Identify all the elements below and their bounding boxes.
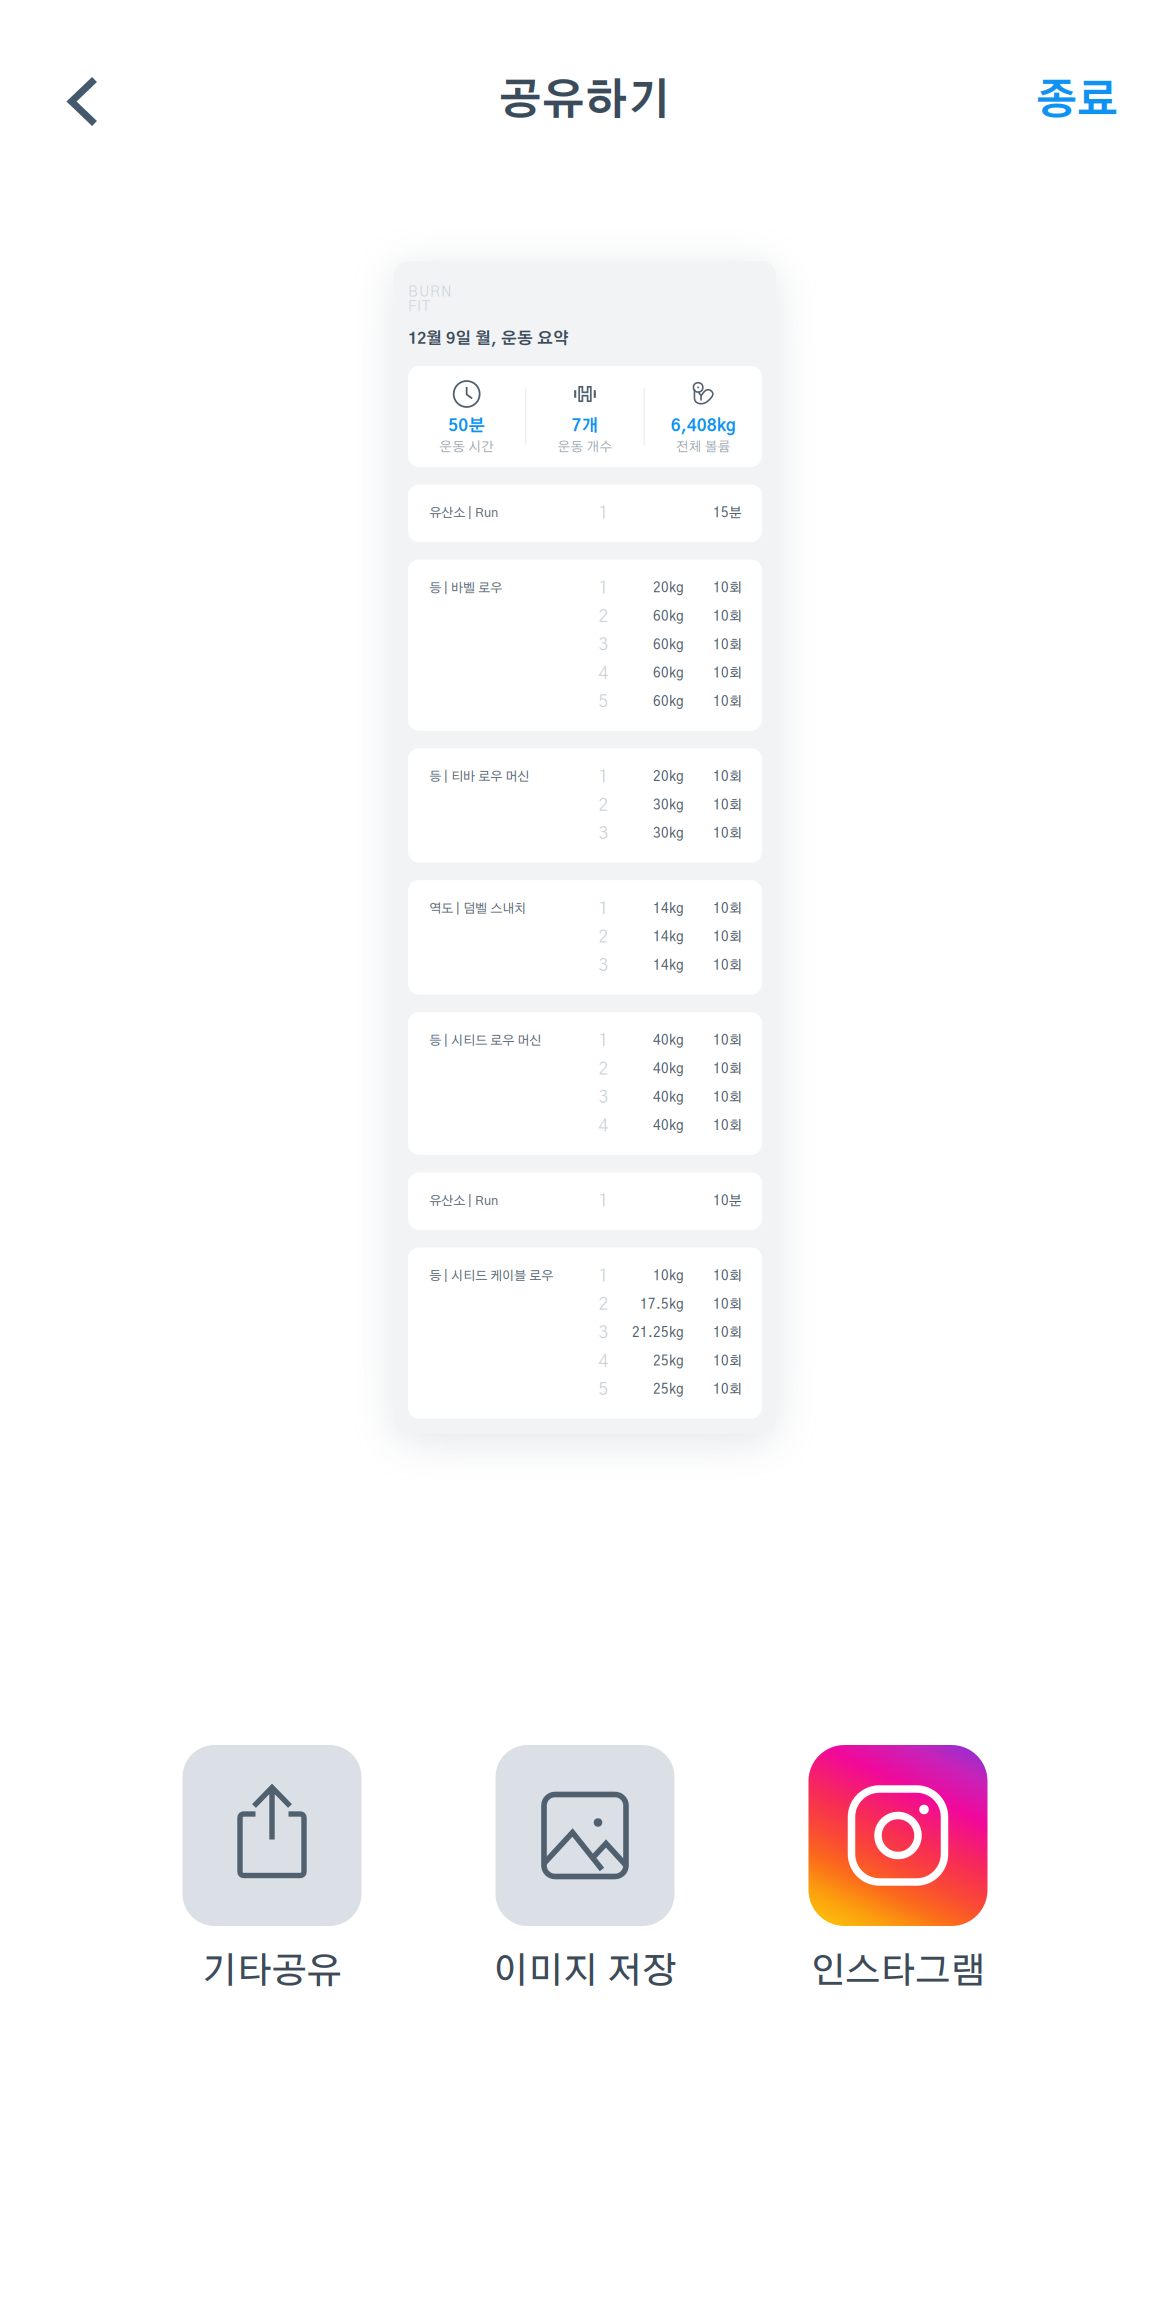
staticText: 등 | 시티드 케이블 로우 [429, 1270, 553, 1283]
staticText: 3 [598, 825, 608, 842]
staticText: 17.5kg [640, 1298, 684, 1311]
staticText: 10회 [713, 902, 742, 916]
staticText: 10회 [713, 667, 742, 680]
staticText: 7개 [571, 418, 598, 435]
staticText: 50분 [448, 418, 485, 435]
staticText: 2 [598, 797, 608, 814]
staticText: 60kg [653, 695, 684, 709]
staticText: 10회 [713, 1091, 742, 1104]
staticText: 25kg [653, 1355, 684, 1368]
staticText: 4 [598, 665, 608, 682]
staticText: 1 [598, 505, 608, 522]
staticText: 60kg [653, 610, 684, 623]
button[interactable]: 종료 [998, 46, 1118, 156]
staticText: 10회 [713, 959, 742, 972]
staticText: 10회 [713, 1119, 742, 1133]
staticText: 역도 | 덤벨 스내치 [429, 903, 526, 915]
button[interactable]: 인스타그램 [783, 1745, 1013, 1990]
staticText: 1 [598, 768, 608, 786]
staticText: 운동 시간 [439, 441, 494, 454]
staticText: 30kg [653, 799, 684, 812]
button[interactable]: Back [37, 46, 129, 156]
staticText: 40kg [653, 1091, 684, 1104]
staticText: 40kg [653, 1063, 684, 1076]
staticText: 3 [598, 636, 608, 654]
staticText: 20kg [653, 582, 684, 595]
staticText: 10회 [713, 1326, 742, 1340]
staticText: 12월 9일 월, 운동 요약 [408, 331, 569, 347]
staticText: 1 [598, 900, 608, 918]
staticText: 40kg [653, 1119, 684, 1133]
staticText: 10회 [713, 610, 742, 623]
staticText: 30kg [653, 827, 684, 840]
staticText: 종료 [1036, 81, 1118, 122]
staticText: 2 [598, 608, 608, 625]
staticText: 2 [598, 929, 608, 946]
staticText: 10회 [713, 638, 742, 652]
staticText: 4 [598, 1117, 608, 1135]
staticText: 10회 [713, 695, 742, 709]
staticText: 1 [598, 580, 608, 597]
staticText: 10회 [713, 770, 742, 784]
staticText: 14kg [653, 931, 684, 944]
staticText: 14kg [653, 902, 684, 916]
staticText: 1 [598, 1032, 608, 1049]
staticText: 21.25kg [632, 1326, 684, 1340]
staticText: 2 [598, 1296, 608, 1313]
staticText: 10회 [713, 931, 742, 944]
staticText: 기타공유 [202, 1954, 342, 1990]
staticText: 1 [598, 1268, 608, 1285]
staticText: 14kg [653, 959, 684, 972]
staticText: 공유하기 [499, 80, 671, 123]
staticText: 등 | 시티드 로우 머신 [429, 1035, 541, 1047]
staticText: 10회 [713, 1270, 742, 1283]
staticText: 10분 [713, 1194, 742, 1208]
staticText: 2 [598, 1061, 608, 1078]
staticText: 운동 개수 [557, 441, 612, 454]
staticText: 60kg [653, 667, 684, 680]
staticText: 등 | 바벨 로우 [429, 582, 502, 595]
staticText: 5 [598, 1381, 608, 1398]
staticText: 3 [598, 1089, 608, 1106]
staticText: 유산소 | Run [429, 1195, 498, 1208]
staticText: 10회 [713, 1383, 742, 1396]
staticText: 10회 [713, 1034, 742, 1047]
staticText: 3 [598, 1324, 608, 1342]
staticText: 10회 [713, 799, 742, 812]
staticText: 등 | 티바 로우 머신 [429, 771, 529, 783]
staticText: 10회 [713, 827, 742, 840]
staticText: 전체 볼륨 [676, 441, 731, 454]
staticText: 40kg [653, 1034, 684, 1047]
staticText: 유산소 | Run [429, 507, 498, 520]
button[interactable]: 기타공유 [157, 1745, 387, 1990]
staticText: 10kg [653, 1270, 684, 1283]
staticText: 15분 [713, 507, 742, 520]
staticText: BURN FIT [408, 285, 452, 314]
staticText: 1 [598, 1192, 608, 1210]
staticText: 3 [598, 957, 608, 974]
staticText: 10회 [713, 1063, 742, 1076]
staticText: 10회 [713, 1355, 742, 1368]
staticText: 이미지 저장 [493, 1954, 677, 1990]
staticText: 20kg [653, 770, 684, 784]
staticText: 인스타그램 [810, 1954, 985, 1990]
button[interactable]: 이미지 저장 [470, 1745, 700, 1990]
staticText: 10회 [713, 1298, 742, 1311]
staticText: 25kg [653, 1383, 684, 1396]
staticText: 60kg [653, 638, 684, 652]
staticText: 5 [598, 693, 608, 711]
staticText: 4 [598, 1353, 608, 1370]
staticText: 10회 [713, 582, 742, 595]
staticText: 6,408kg [671, 418, 736, 435]
